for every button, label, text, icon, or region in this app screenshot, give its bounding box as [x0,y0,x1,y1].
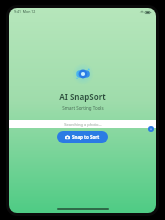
staticText: Smart Sorting Tools [62,105,104,111]
button[interactable]: AI SnapSort [59,91,106,102]
button[interactable]: AI SnapSort logo [72,63,94,85]
staticText: Searching a photo... [64,122,102,127]
button[interactable]: Info [148,126,154,132]
staticText: AI SnapSort [59,91,106,102]
button[interactable]: Searching a photo... [9,120,156,128]
staticText: 9:41 Mon 12 [14,9,36,14]
staticText: Snap to Sort [72,134,100,140]
button[interactable]: Snap to Sort [57,131,108,143]
